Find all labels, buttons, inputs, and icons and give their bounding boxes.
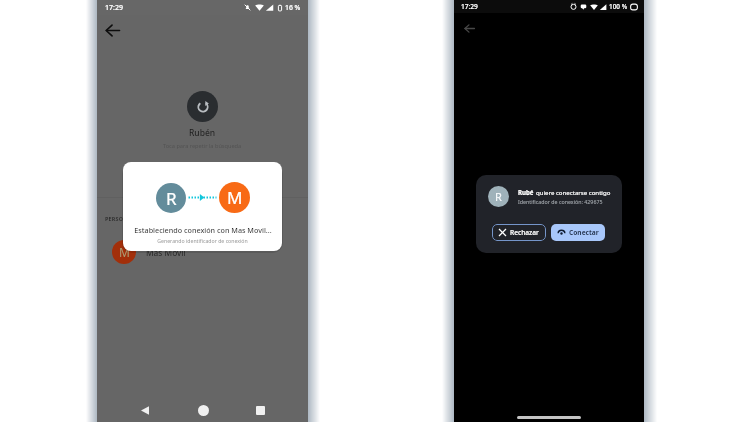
button[interactable]: M [97,234,308,270]
staticText: M [119,244,130,260]
staticText: Estableciendo conexión con Mas Movil... [134,225,272,235]
button[interactable]: Home [193,400,213,420]
staticText: R [495,189,502,204]
staticText: Generando identificador de conexión [157,237,248,244]
button[interactable]: Back [459,18,479,38]
staticText: 17:29 [105,3,123,13]
staticText: PERSONAS CERCANAS [105,215,167,222]
button[interactable]: Back [135,400,155,420]
button[interactable]: Back [101,19,123,41]
staticText: Mas Movil [146,247,186,258]
staticText: Rubén [189,127,216,139]
staticText: Rubé [518,188,536,196]
staticText: 100 % [609,2,628,11]
button[interactable]: Rechazar [492,224,546,241]
staticText: Conectar [569,228,599,237]
staticText: Rechazar [510,228,539,237]
staticText: M [227,186,243,209]
staticText: Identificador de conexión: 429675 [518,198,603,205]
staticText: quiere conectarse contigo [536,188,611,196]
staticText: 16 % [285,3,301,12]
staticText: Toca para repetir la búsqueda [163,142,242,150]
button[interactable]: Repeat search [187,91,218,122]
button[interactable]: Conectar [551,224,605,241]
staticText: R [166,187,177,210]
button[interactable]: Recent apps [250,400,270,420]
staticText: 17:29 [461,2,478,11]
